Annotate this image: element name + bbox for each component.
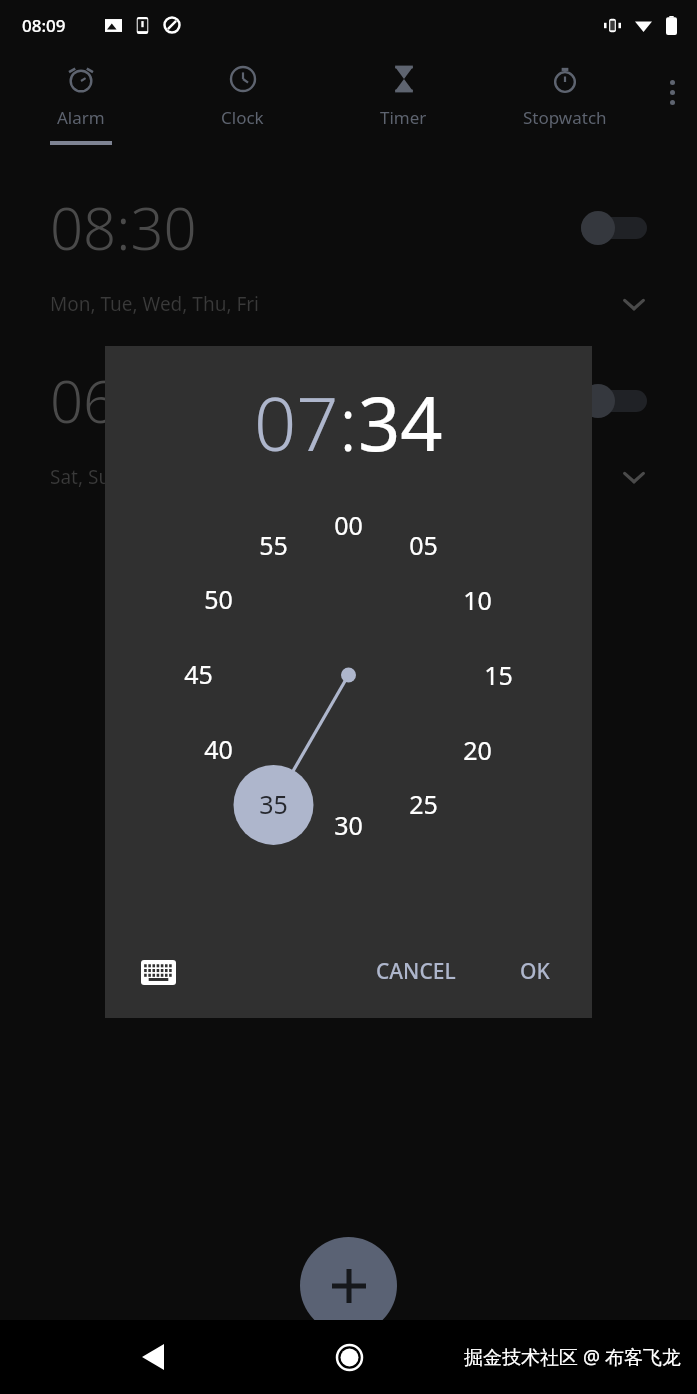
- button[interactable]: OK: [508, 947, 562, 996]
- staticText: Timer: [380, 106, 427, 129]
- button[interactable]: 45: [184, 657, 213, 691]
- button[interactable]: Stopwatch: [484, 50, 645, 162]
- button[interactable]: Back: [132, 1336, 174, 1378]
- button[interactable]: 34: [358, 372, 443, 473]
- staticText: Sat, Sun: [50, 464, 122, 490]
- staticText: Mon, Tue, Wed, Thu, Fri: [50, 291, 260, 317]
- staticText: 掘金技术社区 @ 布客飞龙: [464, 1344, 681, 1370]
- staticText: 00: [334, 508, 363, 542]
- staticText: Clock: [221, 106, 264, 129]
- button[interactable]: 15: [484, 658, 513, 692]
- staticText: CANCEL: [376, 957, 456, 986]
- button[interactable]: Alarm: [0, 50, 162, 162]
- staticText: 20: [463, 733, 492, 767]
- button[interactable]: Home: [328, 1336, 370, 1378]
- staticText: 25: [409, 787, 438, 821]
- staticText: 30: [334, 808, 363, 842]
- staticText: 08:30: [50, 188, 197, 267]
- staticText: 05: [409, 528, 438, 562]
- staticText: 40: [204, 732, 233, 766]
- button[interactable]: 07: [254, 372, 339, 473]
- button[interactable]: Switch to text input: [135, 949, 181, 995]
- staticText: 50: [204, 582, 233, 616]
- staticText: Alarm: [57, 106, 105, 129]
- staticText: 34: [358, 372, 443, 473]
- staticText: 55: [259, 528, 288, 562]
- staticText: 08:09: [22, 14, 66, 37]
- button[interactable]: 08:30: [0, 188, 697, 317]
- staticText: Stopwatch: [523, 106, 607, 129]
- button[interactable]: Clock: [162, 50, 323, 162]
- button[interactable]: CANCEL: [364, 947, 468, 996]
- button[interactable]: 40: [204, 732, 233, 766]
- staticText: 06:00: [50, 361, 197, 440]
- button[interactable]: 10: [463, 583, 492, 617]
- button[interactable]: 05: [409, 528, 438, 562]
- staticText: :: [339, 372, 358, 473]
- staticText: 45: [184, 657, 213, 691]
- staticText: 35: [259, 787, 288, 821]
- staticText: 07: [254, 372, 339, 473]
- staticText: 15: [484, 658, 513, 692]
- button[interactable]: 50: [204, 582, 233, 616]
- button[interactable]: Timer: [323, 50, 484, 162]
- button[interactable]: 00: [334, 508, 363, 542]
- button[interactable]: 25: [409, 787, 438, 821]
- button[interactable]: 30: [334, 808, 363, 842]
- button[interactable]: Add alarm: [300, 1237, 397, 1334]
- button[interactable]: More options: [670, 80, 675, 105]
- button[interactable]: 06:00: [0, 361, 697, 490]
- staticText: 10: [463, 583, 492, 617]
- button[interactable]: 55: [259, 528, 288, 562]
- staticText: OK: [520, 957, 550, 986]
- button[interactable]: 20: [463, 733, 492, 767]
- button[interactable]: 35: [259, 787, 288, 821]
